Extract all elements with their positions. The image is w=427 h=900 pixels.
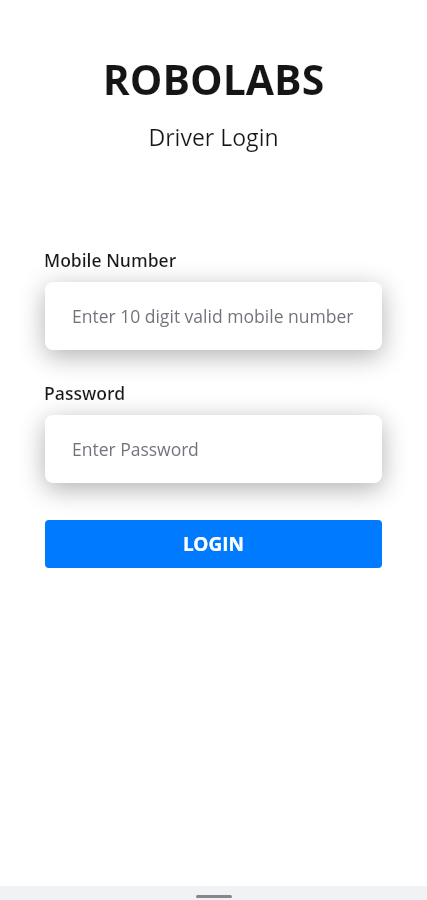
button[interactable]: Enter Password <box>45 415 382 483</box>
other: Home <box>196 895 232 898</box>
button[interactable]: Enter 10 digit valid mobile number <box>45 282 382 350</box>
staticText: LOGIN <box>183 531 244 557</box>
staticText: ROBOLABS <box>0 51 427 107</box>
staticText: Driver Login <box>0 121 427 152</box>
staticText: Enter Password <box>72 437 199 461</box>
staticText: Enter 10 digit valid mobile number <box>72 304 354 328</box>
staticText: Mobile Number <box>44 248 177 272</box>
button[interactable]: LOGIN <box>45 520 382 568</box>
staticText: Password <box>44 381 126 405</box>
